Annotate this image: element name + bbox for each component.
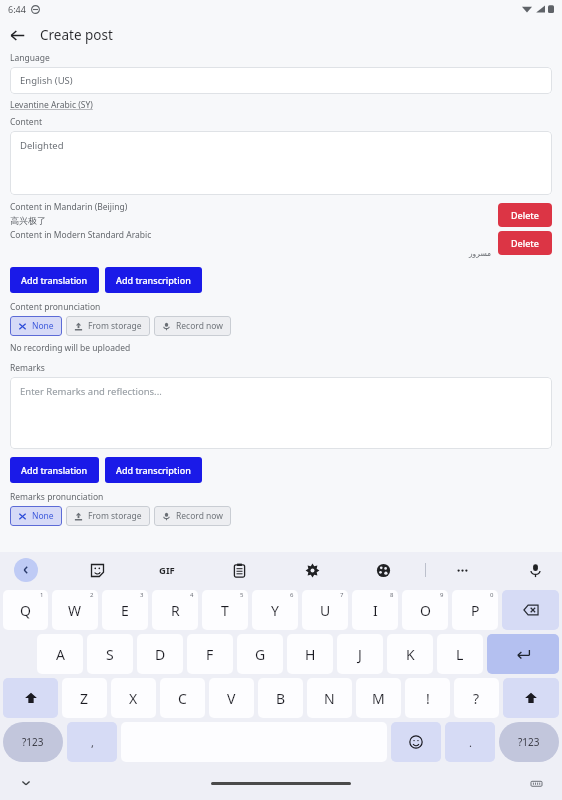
button[interactable]: ? xyxy=(454,678,499,718)
button[interactable]: 5 xyxy=(202,590,248,630)
button[interactable]: Shift xyxy=(503,678,559,718)
button[interactable]: Z xyxy=(62,678,107,718)
button[interactable]: G xyxy=(237,634,283,674)
button[interactable]: Add translation xyxy=(10,457,99,483)
button[interactable]: 0 xyxy=(452,590,498,630)
staticText: 9 xyxy=(440,591,444,599)
button[interactable]: C xyxy=(160,678,205,718)
button[interactable]: 4 xyxy=(152,590,198,630)
button[interactable]: Delighted xyxy=(10,131,552,195)
button[interactable]: Delete xyxy=(498,203,552,227)
button[interactable]: . xyxy=(445,722,495,762)
staticText: 3 xyxy=(140,591,144,599)
staticText: E xyxy=(121,601,129,620)
staticText: G xyxy=(255,645,266,664)
button[interactable]: N xyxy=(307,678,352,718)
button[interactable]: None xyxy=(10,316,62,336)
button[interactable]: GIF xyxy=(155,560,179,581)
staticText: J xyxy=(358,645,362,664)
button[interactable]: Keyboard tool xyxy=(523,558,547,582)
button[interactable]: S xyxy=(87,634,133,674)
button[interactable]: F xyxy=(187,634,233,674)
button[interactable]: 6 xyxy=(252,590,298,630)
button[interactable]: Shift xyxy=(3,678,58,718)
button[interactable]: K xyxy=(387,634,433,674)
button[interactable]: Emoji xyxy=(391,722,441,762)
staticText: From storage xyxy=(88,320,142,332)
staticText: H xyxy=(305,645,316,664)
button[interactable]: B xyxy=(258,678,303,718)
button[interactable]: , xyxy=(67,722,117,762)
staticText: Content xyxy=(10,116,42,128)
staticText: O xyxy=(420,601,431,620)
staticText: Delete xyxy=(511,209,539,221)
button[interactable]: ?123 xyxy=(3,722,63,762)
button[interactable]: None xyxy=(10,506,62,526)
staticText: 5 xyxy=(240,591,244,599)
button[interactable]: From storage xyxy=(66,506,150,526)
button[interactable]: ! xyxy=(405,678,450,718)
button[interactable]: Record now xyxy=(154,506,231,526)
button[interactable]: M xyxy=(356,678,401,718)
button[interactable]: 3 xyxy=(102,590,148,630)
button[interactable]: X xyxy=(111,678,156,718)
staticText: . xyxy=(469,735,472,750)
staticText: 6:44 xyxy=(8,3,26,15)
button[interactable]: Keyboard tool xyxy=(300,558,324,582)
staticText: 6 xyxy=(290,591,294,599)
button[interactable]: 1 xyxy=(3,590,48,630)
button[interactable]: L xyxy=(437,634,483,674)
staticText: 4 xyxy=(190,591,194,599)
button[interactable]: A xyxy=(37,634,83,674)
button[interactable]: H xyxy=(287,634,333,674)
button[interactable]: Delete xyxy=(498,231,552,255)
staticText: None xyxy=(32,510,54,522)
button[interactable]: Keyboard tool xyxy=(450,558,474,582)
button[interactable]: 9 xyxy=(402,590,448,630)
staticText: V xyxy=(227,689,236,708)
button[interactable]: Record now xyxy=(154,316,231,336)
button[interactable]: Hide keyboard xyxy=(16,773,36,793)
staticText: 2 xyxy=(90,591,94,599)
staticText: Add transcription xyxy=(116,464,191,476)
button[interactable]: Enter xyxy=(487,634,559,674)
button[interactable]: Back xyxy=(0,18,34,52)
staticText: Z xyxy=(80,689,89,708)
button[interactable]: Levantine Arabic (SY) xyxy=(10,99,93,111)
button[interactable]: Back xyxy=(14,558,38,582)
button[interactable]: Switch keyboard xyxy=(526,773,546,793)
button[interactable]: Add transcription xyxy=(105,267,202,293)
staticText: L xyxy=(456,645,464,664)
button[interactable]: ?123 xyxy=(499,722,559,762)
staticText: GIF xyxy=(159,564,175,577)
button[interactable]: English (US) xyxy=(10,67,552,94)
button[interactable]: D xyxy=(137,634,183,674)
button[interactable]: 8 xyxy=(352,590,398,630)
staticText: مسرور xyxy=(469,249,492,258)
staticText: R xyxy=(171,601,180,620)
staticText: D xyxy=(155,645,166,664)
staticText: Remarks xyxy=(10,362,45,374)
button[interactable]: Backspace xyxy=(502,590,559,630)
button[interactable]: Add transcription xyxy=(105,457,202,483)
button[interactable]: 7 xyxy=(302,590,348,630)
button[interactable]: 2 xyxy=(52,590,98,630)
button[interactable]: Add translation xyxy=(10,267,99,293)
staticText: 0 xyxy=(490,591,494,599)
staticText: T xyxy=(221,601,229,620)
staticText: , xyxy=(91,735,94,750)
staticText: 高兴极了 xyxy=(10,215,46,226)
button[interactable]: V xyxy=(209,678,254,718)
staticText: From storage xyxy=(88,510,142,522)
staticText: Remarks pronunciation xyxy=(10,491,104,503)
button[interactable]: Enter Remarks and reflections... xyxy=(10,377,552,449)
staticText: Content in Mandarin (Beijing) xyxy=(10,201,128,213)
button[interactable]: Keyboard tool xyxy=(371,558,395,582)
button[interactable]: J xyxy=(337,634,383,674)
staticText: F xyxy=(206,645,214,664)
button[interactable]: Keyboard tool xyxy=(227,558,251,582)
staticText: No recording will be uploaded xyxy=(10,342,131,354)
button[interactable]: Keyboard tool xyxy=(85,558,109,582)
button[interactable]: From storage xyxy=(66,316,150,336)
